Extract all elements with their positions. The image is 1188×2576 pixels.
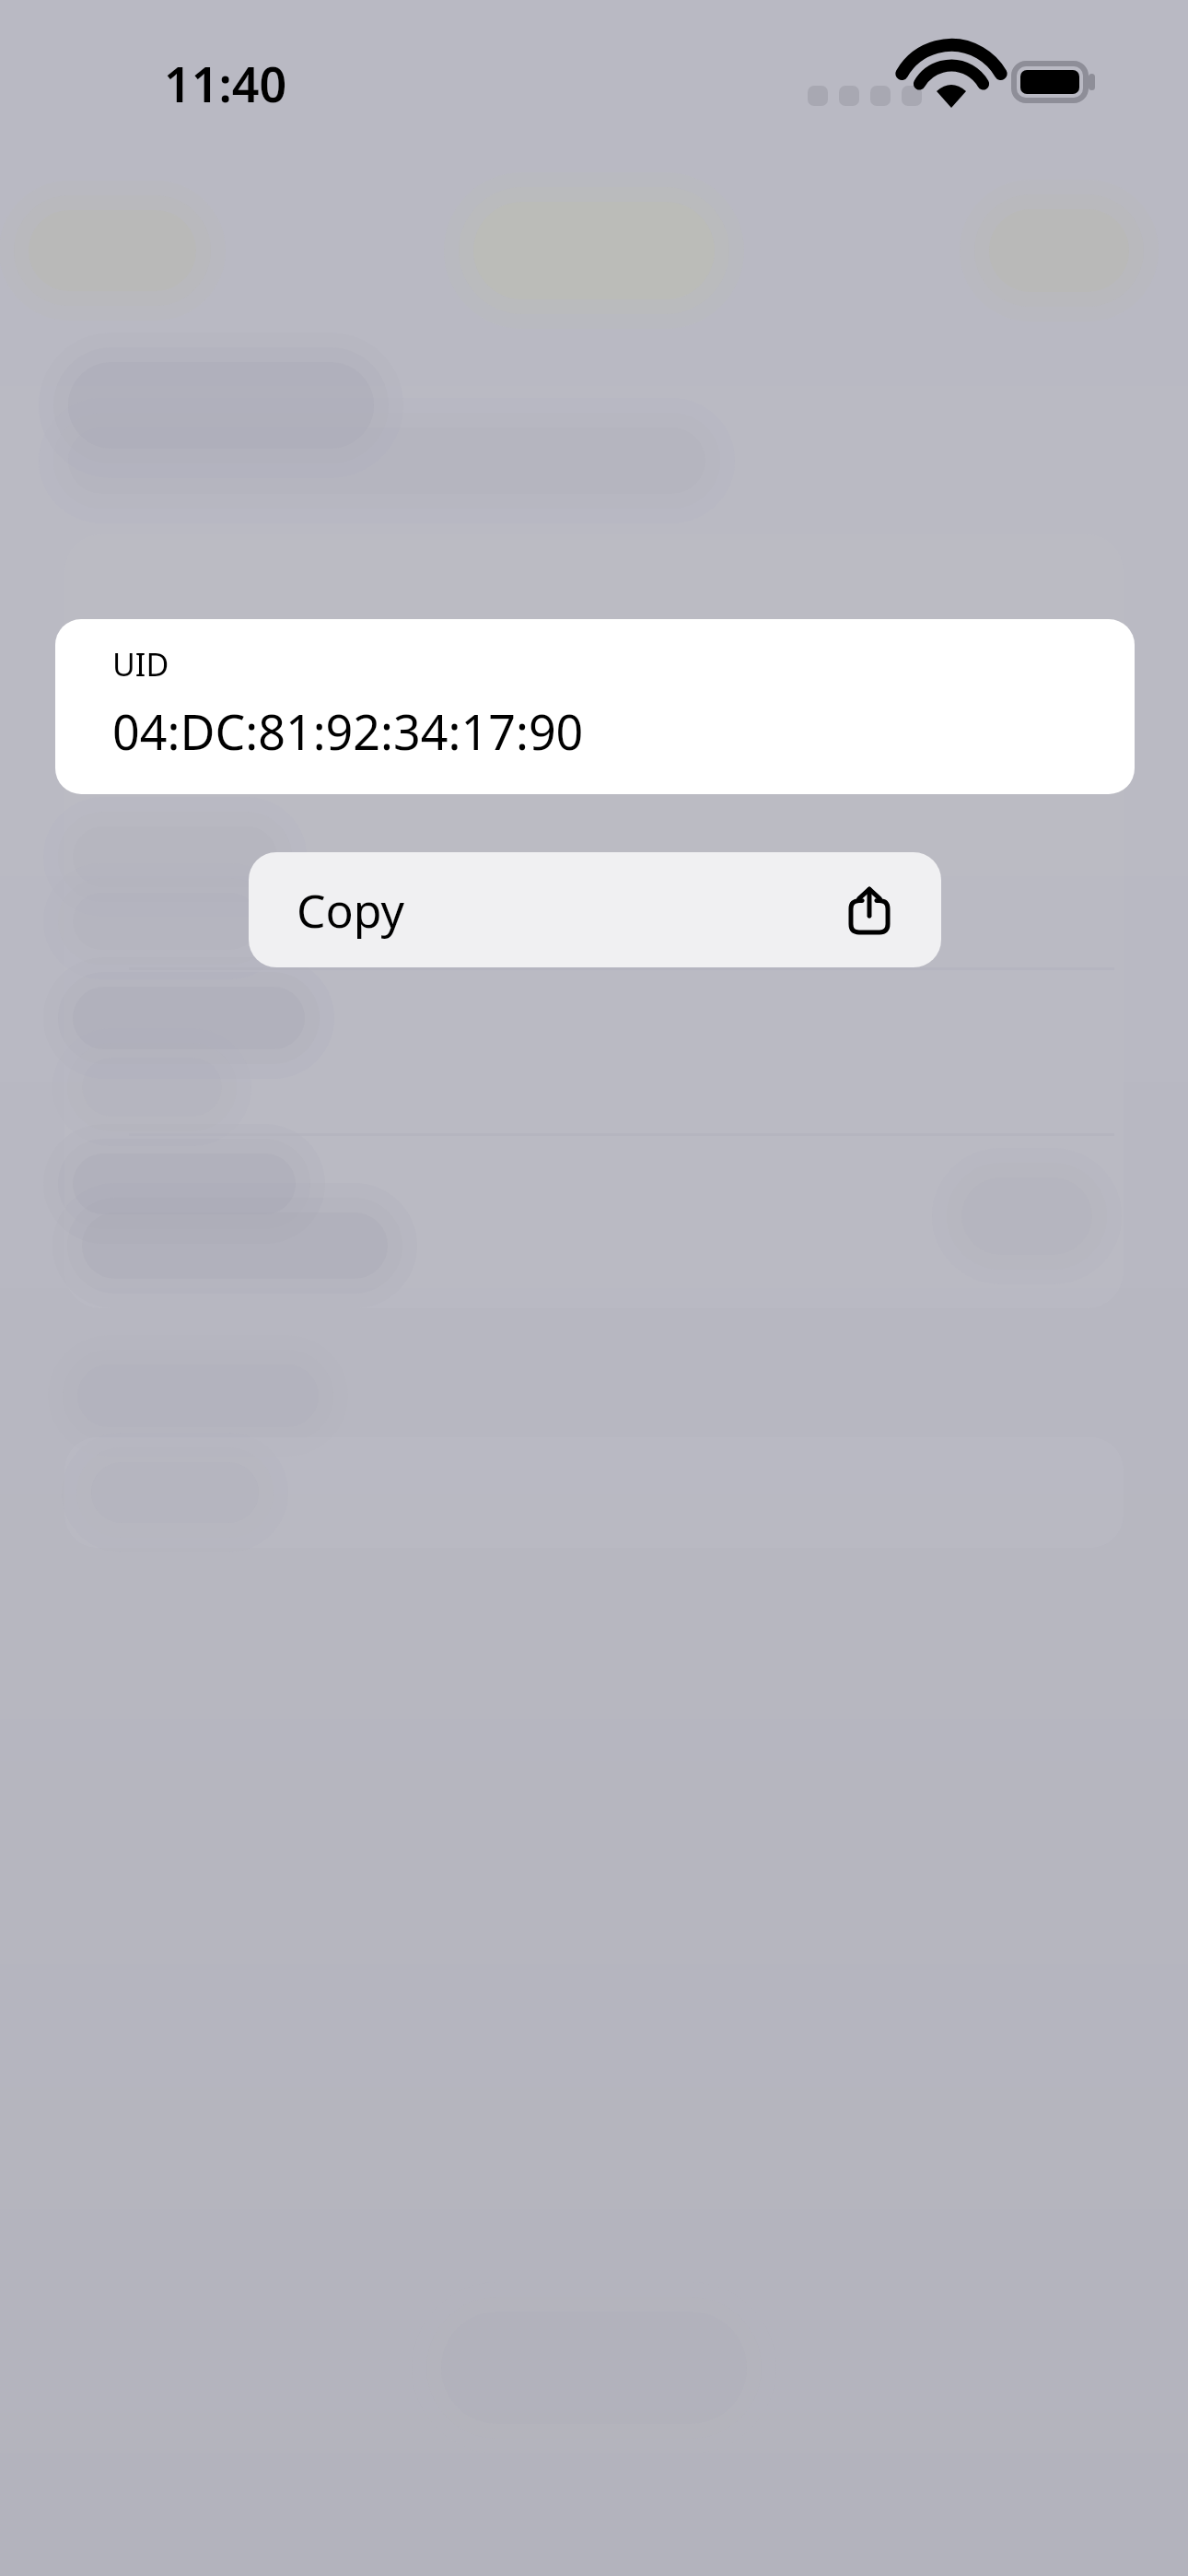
staticText: 11:40 bbox=[164, 51, 287, 116]
staticText: UID bbox=[112, 643, 169, 685]
staticText: Copy bbox=[297, 879, 845, 942]
button[interactable]: Copy bbox=[249, 852, 941, 967]
other: Share bbox=[845, 886, 893, 934]
staticText: 04:DC:81:92:34:17:90 bbox=[112, 698, 584, 764]
button[interactable]: UID bbox=[55, 619, 1135, 794]
